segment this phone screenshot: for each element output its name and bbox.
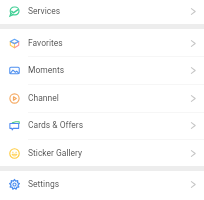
other: Services [9,6,20,17]
button[interactable]: Cards and Offers [0,111,204,139]
button[interactable]: Favorites [0,29,204,57]
button[interactable]: Moments [0,56,204,84]
button[interactable]: Channel [0,84,204,112]
button[interactable]: Sticker Gallery [0,139,204,167]
other: Moments [9,65,20,76]
other: Sticker Gallery [9,148,20,159]
staticText: Moments [28,65,65,75]
staticText: Settings [28,179,60,189]
staticText: Sticker Gallery [28,148,83,158]
staticText: Cards & Offers [28,120,84,130]
other: Cards and Offers [9,120,20,131]
other: Favorites [9,38,20,49]
staticText: Channel [28,93,59,103]
staticText: Favorites [28,38,63,48]
button[interactable]: Settings [0,170,204,198]
other: Settings [9,179,20,190]
button[interactable]: Services [0,0,204,25]
staticText: Services [28,6,61,16]
other: Channel [9,93,20,104]
